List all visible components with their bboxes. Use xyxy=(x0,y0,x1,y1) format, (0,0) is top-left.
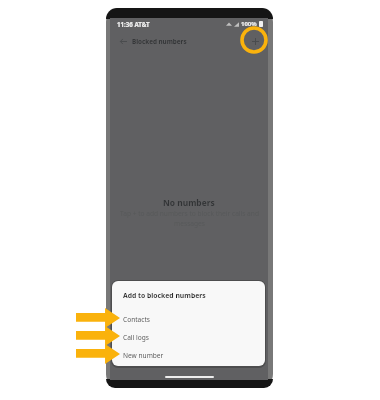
staticText: No numbers xyxy=(163,197,215,208)
staticText: 100% xyxy=(241,20,257,28)
button[interactable]: Contacts xyxy=(112,310,265,328)
staticText: New number xyxy=(123,351,164,360)
button[interactable]: Back xyxy=(115,33,131,49)
staticText: 11:36 AT&T xyxy=(117,20,150,28)
staticText: Add to blocked numbers xyxy=(123,291,206,300)
button[interactable]: Add blocked number xyxy=(246,32,264,50)
button[interactable]: Call logs xyxy=(112,328,265,346)
staticText: Blocked numbers xyxy=(132,37,187,46)
staticText: Contacts xyxy=(123,315,151,324)
staticText: Call logs xyxy=(123,333,149,342)
button[interactable]: New number xyxy=(112,346,265,364)
